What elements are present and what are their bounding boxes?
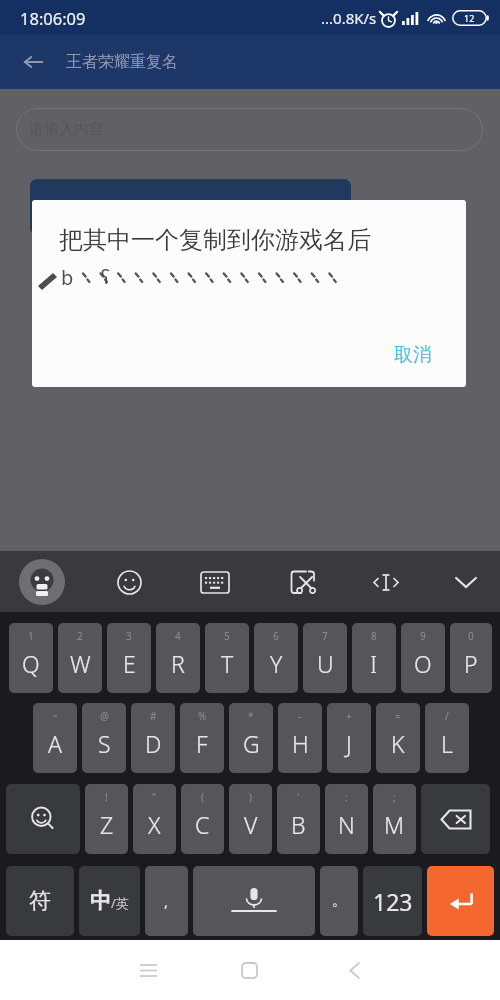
button[interactable]: 符 <box>6 866 74 936</box>
staticText: 9 <box>420 629 426 643</box>
button[interactable]: 8 <box>352 623 396 693</box>
staticText: 6 <box>273 629 279 643</box>
staticText: 8 <box>371 629 377 643</box>
button[interactable]: Move cursor <box>363 559 409 605</box>
staticText: R <box>171 648 185 679</box>
button[interactable]: Backspace <box>421 784 490 854</box>
button[interactable]: Back <box>16 45 50 79</box>
staticText: 2 <box>77 629 83 643</box>
staticText: G <box>243 728 260 759</box>
staticText: ~ <box>52 709 58 723</box>
staticText: 王者荣耀重复名 <box>66 52 178 72</box>
staticText: 取消 <box>394 343 432 367</box>
button[interactable]: 1 <box>9 623 53 693</box>
button[interactable]: 。 <box>320 866 358 936</box>
button[interactable]: ( <box>181 784 224 854</box>
staticText: X <box>148 809 161 840</box>
button[interactable]: 123 <box>363 866 422 936</box>
button[interactable]: Home <box>224 945 274 995</box>
button[interactable]: 4 <box>156 623 200 693</box>
button[interactable]: = <box>376 703 420 773</box>
button[interactable]: # <box>131 703 175 773</box>
staticText: ( <box>201 790 204 804</box>
button[interactable]: 6 <box>254 623 298 693</box>
button[interactable]: Stickers <box>106 559 152 605</box>
button[interactable]: 7 <box>303 623 347 693</box>
staticText: L <box>441 728 453 759</box>
button[interactable]: , <box>145 866 188 936</box>
button[interactable]: 9 <box>401 623 445 693</box>
staticText: N <box>338 809 355 840</box>
button[interactable]: 3 <box>107 623 151 693</box>
button[interactable]: Voice input <box>193 866 315 936</box>
staticText: B <box>291 809 306 840</box>
button[interactable]: 请输入内容 <box>16 108 483 151</box>
staticText: 12 <box>464 12 475 24</box>
button[interactable]: - <box>278 703 322 773</box>
staticText: K <box>391 728 405 759</box>
button[interactable]: 取消 <box>386 337 440 373</box>
staticText: T <box>221 648 234 679</box>
staticText: * <box>248 709 254 723</box>
button[interactable]: % <box>180 703 224 773</box>
staticText: 符 <box>29 887 51 915</box>
staticText: ) <box>249 790 252 804</box>
button[interactable]: " <box>133 784 176 854</box>
button[interactable]: Hide keyboard <box>443 559 489 605</box>
staticText: 请输入内容 <box>29 120 104 139</box>
staticText: : <box>345 790 348 804</box>
staticText: H <box>292 728 309 759</box>
button[interactable]: 5 <box>205 623 249 693</box>
button[interactable]: 中 <box>79 866 140 936</box>
button[interactable]: Enter <box>427 866 494 936</box>
staticText: ; <box>393 790 396 804</box>
button[interactable]: ) <box>229 784 272 854</box>
button[interactable] <box>30 179 351 235</box>
staticText: D <box>145 728 162 759</box>
staticText: V <box>244 809 258 840</box>
staticText: 18:06:09 <box>20 7 86 29</box>
button[interactable]: + <box>327 703 371 773</box>
button[interactable]: ~ <box>33 703 77 773</box>
staticText: 5 <box>224 629 230 643</box>
staticText: W <box>70 648 91 679</box>
button[interactable]: : <box>325 784 368 854</box>
staticText: S <box>98 728 111 759</box>
button[interactable]: @ <box>82 703 126 773</box>
staticText: 。 <box>332 892 346 910</box>
button[interactable]: ! <box>85 784 128 854</box>
button[interactable]: Back <box>329 945 379 995</box>
button[interactable]: Clipboard <box>280 559 326 605</box>
button[interactable]: ; <box>373 784 416 854</box>
button[interactable]: 2 <box>58 623 102 693</box>
staticText: 把其中一个复制到你游戏名后 <box>59 225 371 255</box>
staticText: A <box>48 728 62 759</box>
button[interactable]: Emoji search <box>6 784 80 854</box>
staticText: F <box>196 728 208 759</box>
staticText: J <box>346 728 352 759</box>
staticText: # <box>150 709 157 723</box>
button[interactable]: 0 <box>450 623 492 693</box>
staticText: 3 <box>126 629 132 643</box>
staticText: = <box>395 709 401 723</box>
staticText: ' <box>297 790 300 804</box>
staticText: Q <box>22 648 40 679</box>
button[interactable]: Emoji keyboard <box>19 559 65 605</box>
button[interactable]: Recents <box>123 945 173 995</box>
staticText: @ <box>100 709 109 723</box>
staticText: P <box>464 648 478 679</box>
staticText: - <box>298 709 302 723</box>
button[interactable]: ' <box>277 784 320 854</box>
staticText: M <box>384 809 405 840</box>
staticText: U <box>317 648 334 679</box>
button[interactable]: / <box>425 703 469 773</box>
staticText: " <box>152 790 157 804</box>
button[interactable]: * <box>229 703 273 773</box>
button[interactable]: Keyboard layout <box>192 559 238 605</box>
staticText: / <box>445 709 449 723</box>
staticText: + <box>346 709 352 723</box>
staticText: O <box>414 648 432 679</box>
staticText: Z <box>100 809 114 840</box>
staticText: ! <box>105 790 108 804</box>
staticText: 0 <box>468 629 474 643</box>
